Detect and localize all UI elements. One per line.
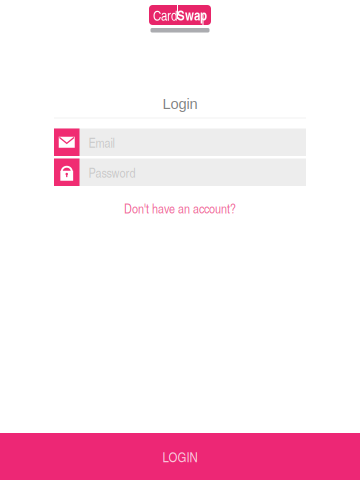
button[interactable]: Password — [54, 158, 306, 186]
staticText: Password — [88, 163, 135, 181]
button[interactable]: Don't have an account? — [124, 199, 236, 217]
button[interactable]: LOGIN — [0, 433, 360, 480]
staticText: Email — [88, 133, 114, 151]
staticText: Login — [162, 96, 197, 112]
staticText: Card — [153, 5, 177, 25]
button[interactable]: Email — [54, 128, 306, 156]
staticText: Don't have an account? — [124, 199, 236, 217]
staticText: LOGIN — [162, 447, 197, 466]
staticText: Swap — [177, 5, 207, 25]
